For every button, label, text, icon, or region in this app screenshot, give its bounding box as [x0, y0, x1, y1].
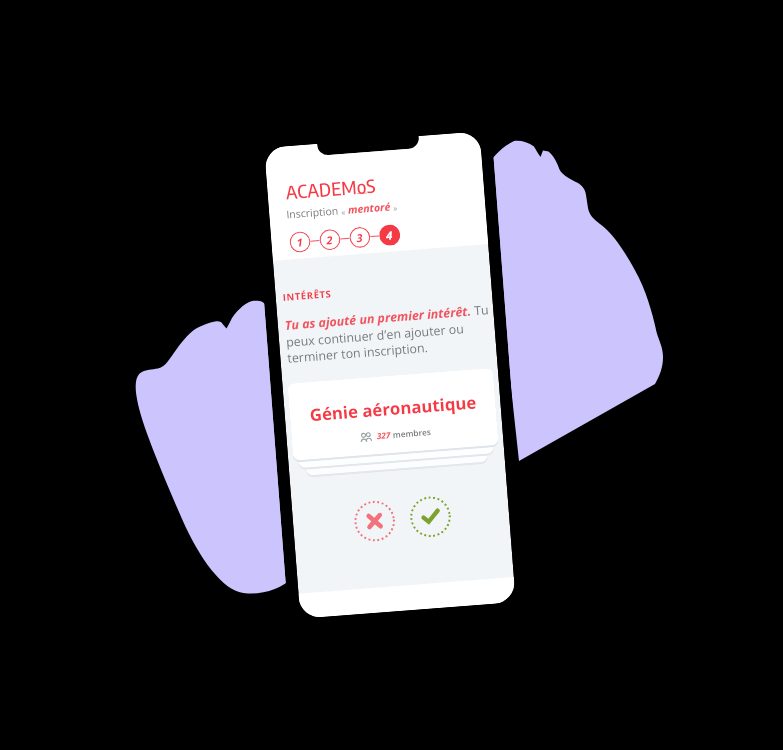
staticText: 4	[386, 227, 394, 243]
button[interactable]: Génie aéronautique	[287, 368, 499, 461]
staticText: 1	[296, 234, 304, 250]
button[interactable]: 1	[289, 231, 311, 253]
button[interactable]: Accepter	[408, 495, 452, 539]
staticText: «	[341, 206, 346, 217]
staticText: 2	[326, 232, 334, 247]
staticText: Inscription	[286, 203, 342, 221]
staticText: 327	[376, 429, 391, 441]
staticText: »	[393, 202, 398, 213]
staticText: membres	[390, 426, 432, 440]
button[interactable]: 2	[319, 228, 341, 251]
button[interactable]: Refuser	[353, 499, 397, 543]
staticText: Tu as ajouté un premier intérêt. Tu peux…	[284, 301, 496, 367]
button[interactable]: 4	[378, 224, 401, 246]
staticText: ACADEMoS	[285, 173, 377, 202]
staticText: 3	[356, 230, 364, 245]
staticText: mentoré	[345, 199, 394, 217]
button[interactable]: 3	[349, 226, 371, 249]
staticText: INTÉRÊTS	[282, 287, 332, 304]
staticText: Génie aéronautique	[309, 390, 477, 426]
